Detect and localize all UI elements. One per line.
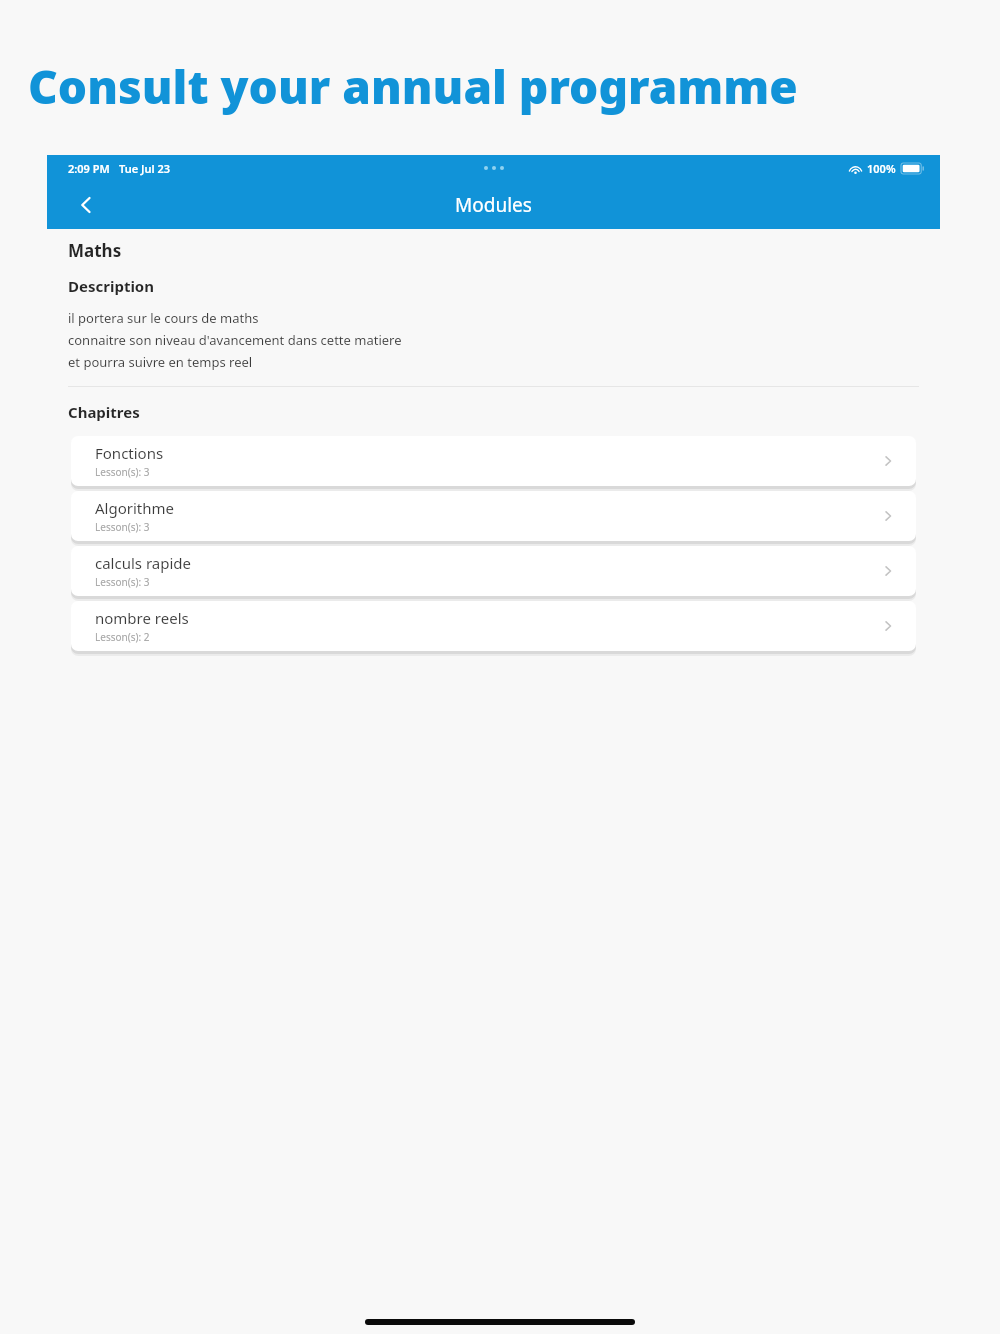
staticText: Tue Jul 23 xyxy=(119,161,170,176)
staticText: et pourra suivre en temps reel xyxy=(68,353,253,371)
staticText: 100% xyxy=(867,161,896,176)
button[interactable]: nombre reels xyxy=(71,601,916,651)
staticText: Lesson(s): 3 xyxy=(95,465,150,479)
staticText: il portera sur le cours de maths xyxy=(68,309,259,327)
staticText: Lesson(s): 2 xyxy=(95,630,150,644)
staticText: Algorithme xyxy=(95,498,174,518)
button[interactable]: Algorithme xyxy=(71,491,916,541)
staticText: Lesson(s): 3 xyxy=(95,575,150,589)
staticText: Modules xyxy=(455,192,532,218)
staticText: connaitre son niveau d'avancement dans c… xyxy=(68,331,402,349)
staticText: Fonctions xyxy=(95,443,164,463)
button[interactable]: Fonctions xyxy=(71,436,916,486)
button[interactable]: Back xyxy=(69,188,103,222)
staticText: 2:09 PM xyxy=(68,161,110,176)
button[interactable]: calculs rapide xyxy=(71,546,916,596)
staticText: Lesson(s): 3 xyxy=(95,520,150,534)
staticText: nombre reels xyxy=(95,608,189,628)
staticText: Consult your annual programme xyxy=(28,55,798,118)
staticText: calculs rapide xyxy=(95,553,192,573)
staticText: Description xyxy=(68,276,154,296)
staticText: Chapitres xyxy=(68,402,140,422)
staticText: Maths xyxy=(68,239,122,262)
